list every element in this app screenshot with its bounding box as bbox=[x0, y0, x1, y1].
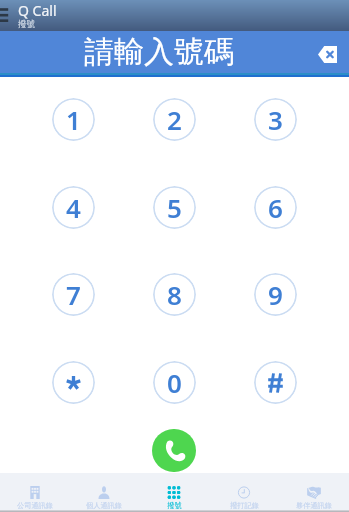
staticText: 9 bbox=[268, 277, 283, 312]
button[interactable]: 夥伴通訊錄 bbox=[279, 473, 349, 510]
staticText: 2 bbox=[167, 102, 182, 137]
button[interactable]: 2 bbox=[153, 98, 196, 141]
button[interactable]: 0 bbox=[153, 361, 196, 404]
staticText: 撥打記錄 bbox=[230, 501, 259, 510]
button[interactable]: 個人通訊錄 bbox=[69, 473, 139, 510]
staticText: 個人通訊錄 bbox=[86, 501, 122, 510]
staticText: 4 bbox=[66, 190, 81, 225]
staticText: 撥號 bbox=[167, 501, 182, 510]
button[interactable]: Call bbox=[152, 429, 196, 472]
staticText: 0 bbox=[167, 365, 182, 400]
button[interactable] bbox=[52, 361, 95, 404]
staticText: 請輸入號碼 bbox=[84, 33, 234, 71]
staticText: 3 bbox=[268, 102, 283, 137]
button[interactable]: 1 bbox=[52, 98, 95, 141]
button[interactable]: 公司通訊錄 bbox=[0, 473, 69, 510]
button[interactable]: 撥號 bbox=[139, 473, 209, 510]
button[interactable]: 撥打記錄 bbox=[209, 473, 279, 510]
staticText: 撥號 bbox=[18, 19, 35, 30]
button[interactable]: 7 bbox=[52, 273, 95, 316]
staticText: 1 bbox=[66, 102, 81, 137]
staticText: 夥伴通訊錄 bbox=[296, 501, 332, 510]
button[interactable]: 8 bbox=[153, 273, 196, 316]
staticText: 6 bbox=[268, 190, 283, 225]
button[interactable]: 4 bbox=[52, 186, 95, 229]
button[interactable]: 3 bbox=[254, 98, 297, 141]
button[interactable] bbox=[254, 361, 297, 404]
button[interactable]: Backspace bbox=[318, 46, 337, 63]
staticText: 公司通訊錄 bbox=[17, 501, 53, 510]
staticText: 5 bbox=[167, 190, 182, 225]
button[interactable]: 9 bbox=[254, 273, 297, 316]
button[interactable]: 5 bbox=[153, 186, 196, 229]
staticText: 8 bbox=[167, 277, 182, 312]
staticText: 7 bbox=[66, 277, 81, 312]
button[interactable]: Menu bbox=[0, 0, 22, 31]
button[interactable]: 6 bbox=[254, 186, 297, 229]
staticText: Q Call bbox=[18, 1, 57, 20]
